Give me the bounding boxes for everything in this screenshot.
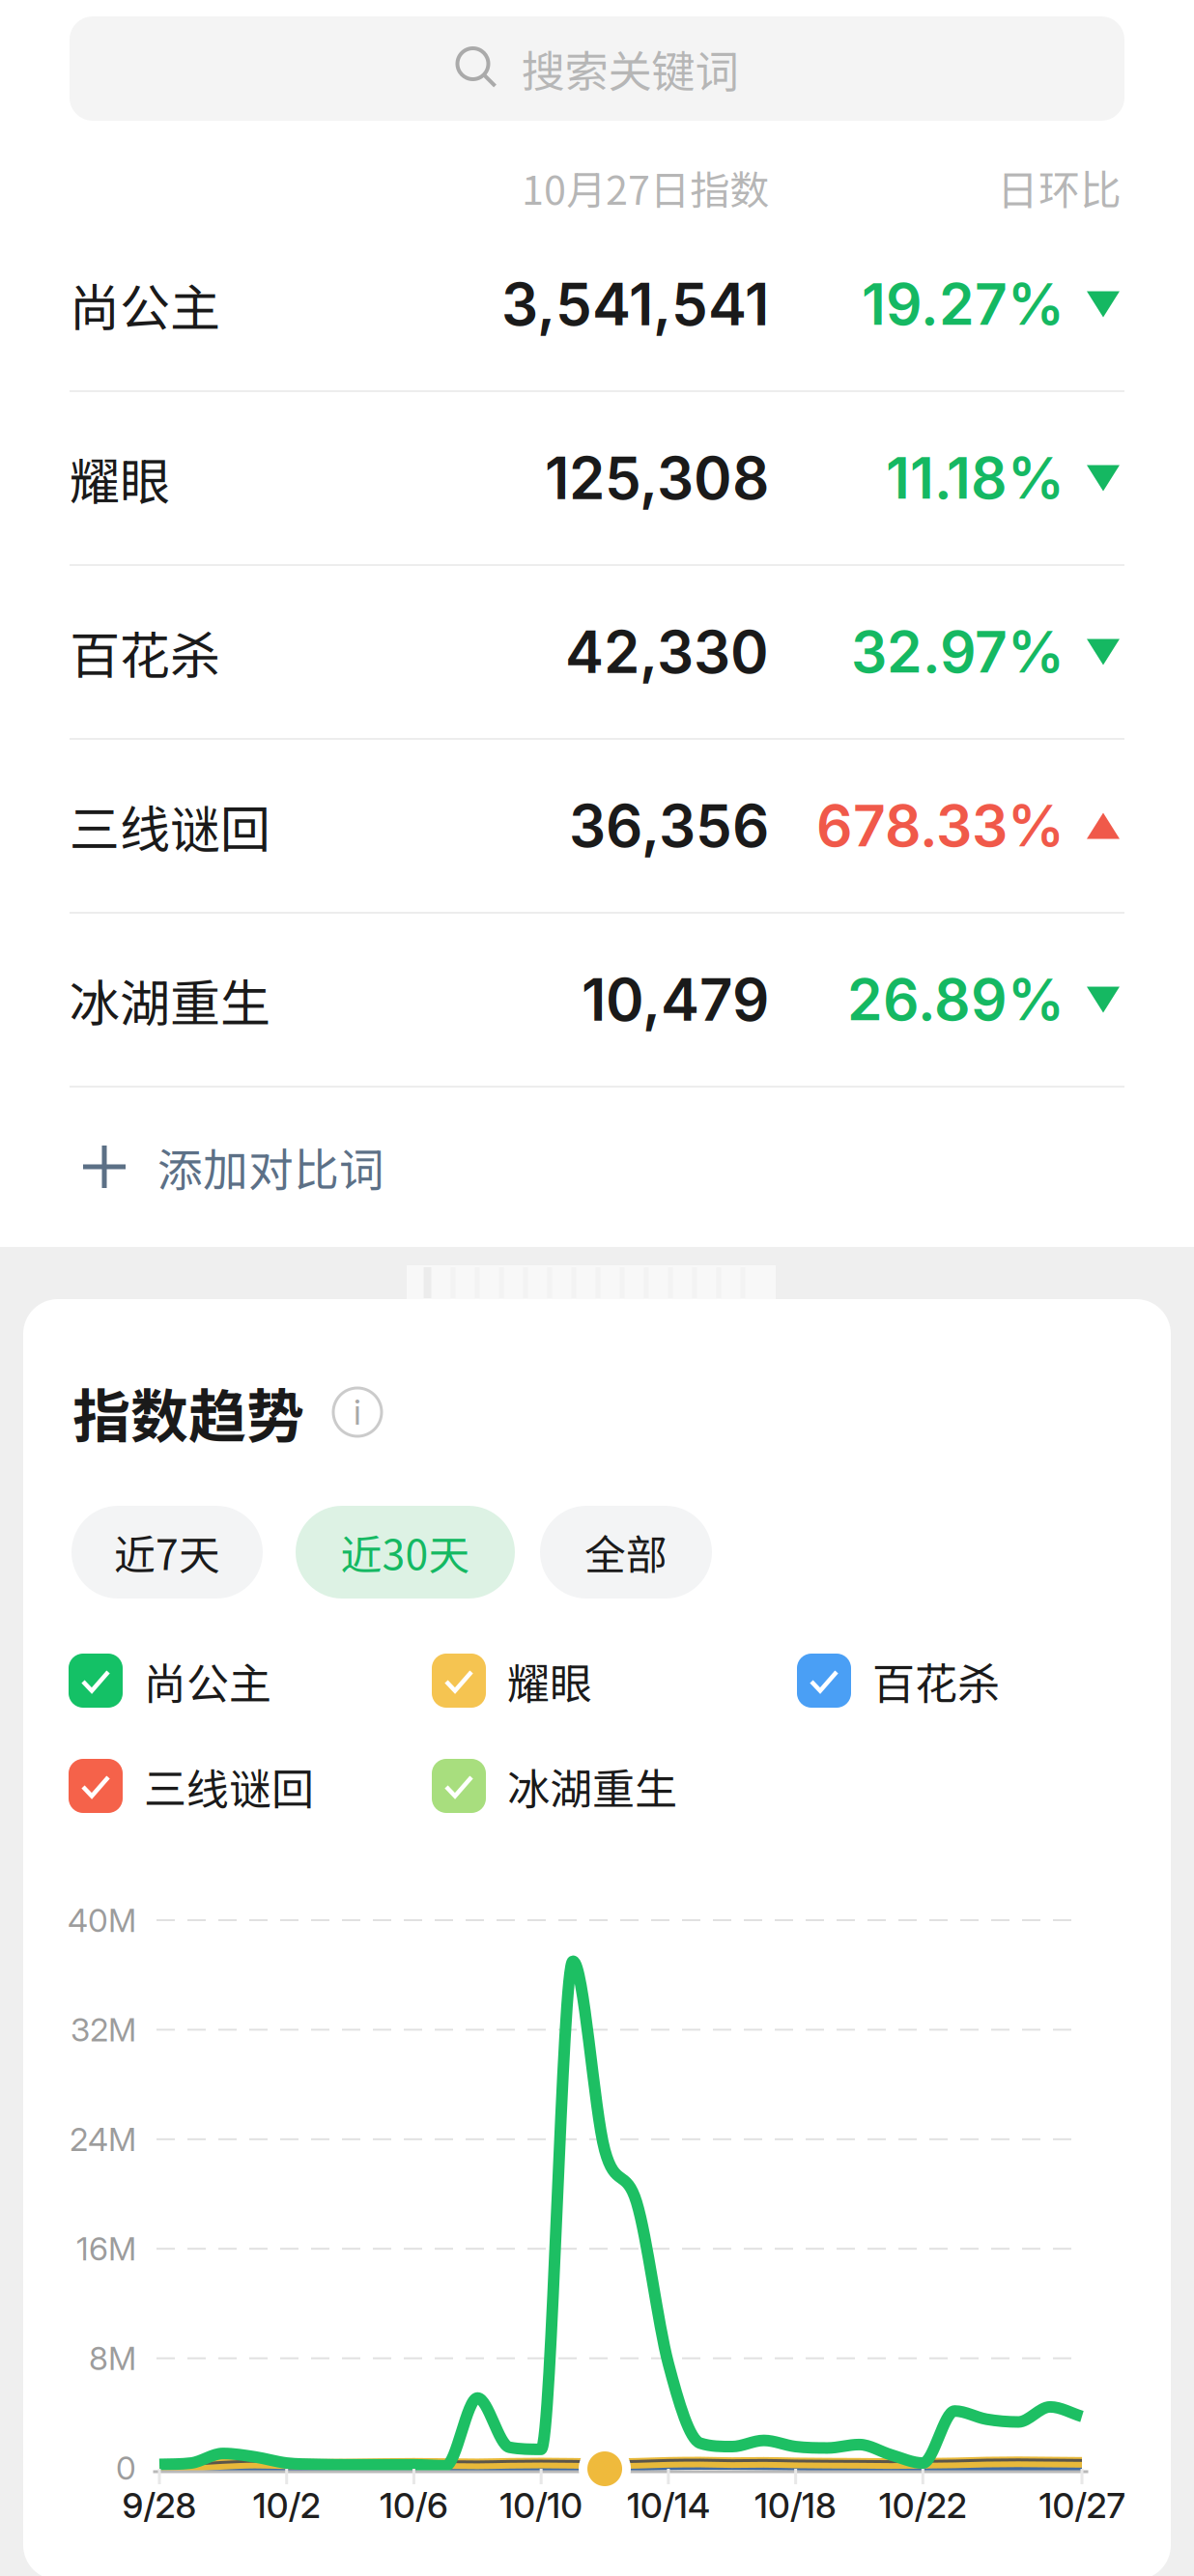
staticText: 10/2 <box>253 2484 320 2527</box>
button[interactable]: 冰湖重生 <box>0 913 1194 1087</box>
staticText: 19.27% <box>862 270 1065 339</box>
button[interactable]: 百花杀 <box>0 565 1194 739</box>
staticText: 耀眼 <box>507 1650 592 1711</box>
staticText: 10/18 <box>755 2484 837 2527</box>
button[interactable]: 近30天 <box>296 1506 515 1599</box>
staticText: 125,308 <box>545 443 769 513</box>
staticText: 全部 <box>584 1522 668 1582</box>
staticText: 冰湖重生 <box>70 963 270 1036</box>
button[interactable]: 搜索关键词 <box>70 16 1124 121</box>
button[interactable]: 尚公主 <box>0 217 1194 391</box>
staticText: 40M <box>68 1901 136 1940</box>
button[interactable]: 耀眼 <box>432 1652 760 1710</box>
staticText: 三线谜回 <box>70 790 270 862</box>
button[interactable]: 添加对比词 <box>0 1088 1194 1246</box>
staticText: 添加对比词 <box>157 1134 384 1199</box>
staticText: 42,330 <box>565 617 769 687</box>
button[interactable]: 近7天 <box>71 1506 263 1599</box>
button[interactable]: 百花杀 <box>797 1652 1125 1710</box>
staticText: 近7天 <box>114 1522 220 1582</box>
staticText: 3,541,541 <box>501 269 769 339</box>
staticText: 36,356 <box>569 791 769 861</box>
staticText: 10月27日指数 <box>522 159 769 216</box>
staticText: 16M <box>76 2229 136 2268</box>
staticText: 10/22 <box>879 2484 967 2527</box>
staticText: 32.97% <box>851 618 1065 686</box>
staticText: 26.89% <box>847 965 1065 1034</box>
staticText: 冰湖重生 <box>507 1755 677 1817</box>
button[interactable]: 耀眼 <box>0 391 1194 565</box>
staticText: 10,479 <box>582 965 769 1035</box>
staticText: 三线谜回 <box>144 1755 314 1817</box>
staticText: 9/28 <box>122 2484 197 2527</box>
staticText: 0 <box>116 2448 136 2487</box>
staticText: 指数趋势 <box>72 1370 304 1454</box>
staticText: 百花杀 <box>70 616 220 688</box>
button[interactable]: 尚公主 <box>69 1652 397 1710</box>
staticText: 搜索关键词 <box>521 37 739 100</box>
staticText: 百花杀 <box>872 1650 1000 1711</box>
staticText: 10/10 <box>500 2484 583 2527</box>
staticText: 10/14 <box>627 2484 710 2527</box>
button[interactable]: 三线谜回 <box>0 739 1194 913</box>
staticText: i <box>354 1391 361 1433</box>
staticText: 24M <box>70 2120 136 2159</box>
staticText: 尚公主 <box>144 1650 271 1711</box>
staticText: 近30天 <box>341 1522 470 1582</box>
staticText: 678.33% <box>816 792 1065 860</box>
button[interactable]: 全部 <box>540 1506 712 1599</box>
staticText: 日环比 <box>997 158 1122 217</box>
staticText: 11.18% <box>886 444 1065 512</box>
staticText: 8M <box>89 2339 136 2378</box>
staticText: 10/6 <box>380 2484 448 2527</box>
staticText: 耀眼 <box>70 442 170 515</box>
button[interactable]: 冰湖重生 <box>432 1757 760 1815</box>
button[interactable]: 三线谜回 <box>69 1757 397 1815</box>
staticText: 尚公主 <box>70 268 220 341</box>
staticText: 32M <box>71 2010 136 2049</box>
staticText: 10/27 <box>1039 2484 1125 2527</box>
